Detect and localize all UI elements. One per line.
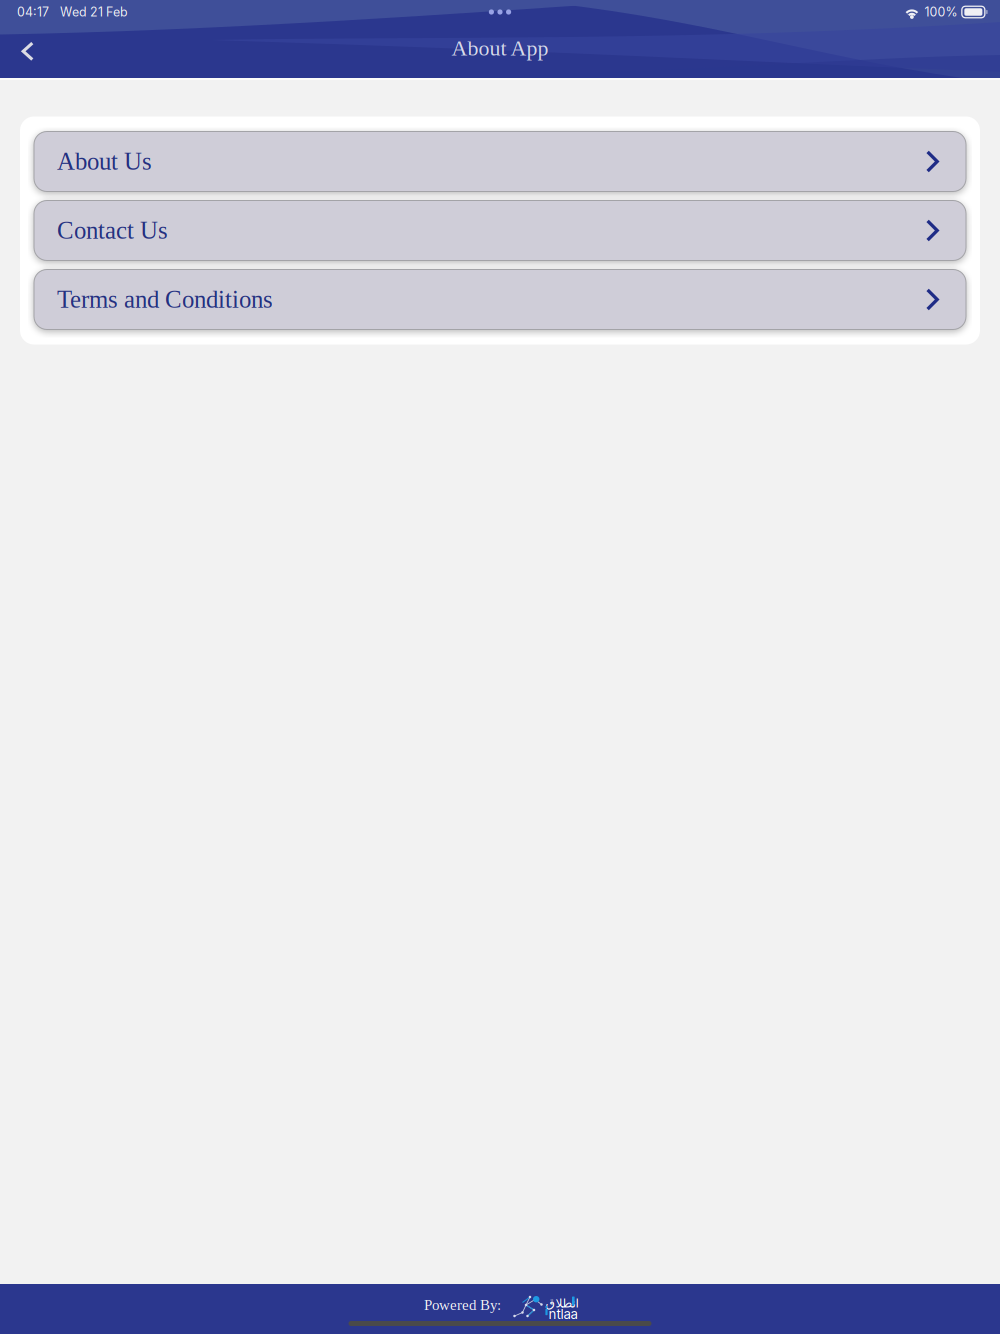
button[interactable]: Back: [5, 29, 49, 73]
button[interactable]: About Us: [34, 131, 966, 191]
staticText: About Us: [57, 148, 152, 175]
staticText: Terms and Conditions: [57, 286, 273, 313]
staticText: 100%: [924, 4, 957, 19]
staticText: About App: [451, 36, 548, 60]
staticText: ntlaa: [548, 1306, 577, 1322]
staticText: انطلاق: [545, 1296, 578, 1310]
staticText: 04:17: [17, 4, 49, 19]
staticText: Powered By:: [424, 1297, 501, 1313]
staticText: Contact Us: [57, 217, 168, 244]
button[interactable]: Contact Us: [34, 200, 966, 260]
button[interactable]: Terms and Conditions: [34, 269, 966, 329]
staticText: Wed 21 Feb: [60, 4, 128, 19]
